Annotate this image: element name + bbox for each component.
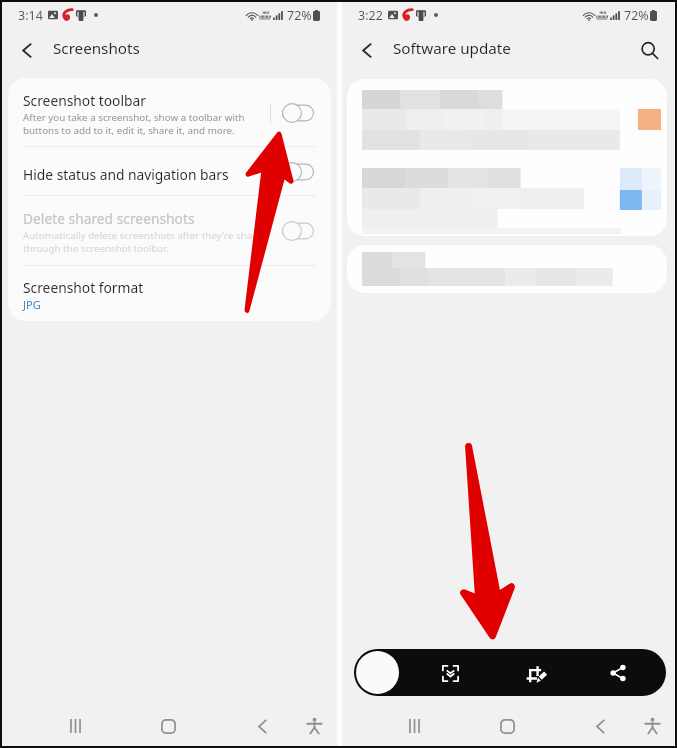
button[interactable]: Scroll capture	[431, 654, 469, 692]
button[interactable]: Accessibility	[635, 709, 669, 743]
staticText: JPG	[23, 297, 41, 312]
staticText: Screenshot toolbar	[23, 91, 146, 110]
button[interactable]: Delete shared screenshots	[8, 196, 331, 266]
button[interactable]: Home	[490, 709, 524, 743]
button[interactable]: Share	[599, 654, 637, 692]
staticText: 3:14	[18, 7, 43, 24]
staticText: Automatically delete screenshots after t…	[23, 229, 268, 255]
button[interactable]: Toggle switch	[282, 221, 314, 241]
button[interactable]: Back	[245, 709, 279, 743]
button[interactable]: Navigate up	[342, 28, 392, 72]
staticText: 3:22	[358, 7, 383, 24]
button[interactable]: Hide status and navigation bars	[8, 147, 331, 196]
button[interactable]: Recent apps	[58, 709, 92, 743]
staticText: 72%	[624, 7, 649, 24]
button[interactable]: Toggle switch	[282, 162, 314, 182]
button[interactable]: Toggle switch	[282, 103, 314, 123]
button[interactable]: Screenshot toolbar	[8, 78, 331, 147]
button[interactable]: Screenshot preview	[356, 651, 399, 694]
button[interactable]: Accessibility	[297, 709, 331, 743]
staticText: After you take a screenshot, show a tool…	[23, 111, 245, 137]
button[interactable]: Crop and edit	[517, 654, 555, 692]
staticText: Software update	[393, 38, 511, 59]
staticText: Screenshots	[53, 38, 140, 59]
button[interactable]: Back	[583, 709, 617, 743]
button[interactable]: Search	[627, 28, 671, 72]
staticText: Hide status and navigation bars	[23, 165, 229, 184]
button[interactable]: Home	[151, 709, 185, 743]
button[interactable]: Navigate up	[2, 28, 52, 72]
button[interactable]: Recent apps	[397, 709, 431, 743]
button[interactable]: Screenshot format	[8, 266, 331, 321]
staticText: Screenshot format	[23, 278, 144, 297]
staticText: 72%	[287, 7, 312, 24]
staticText: Delete shared screenshots	[23, 209, 195, 228]
